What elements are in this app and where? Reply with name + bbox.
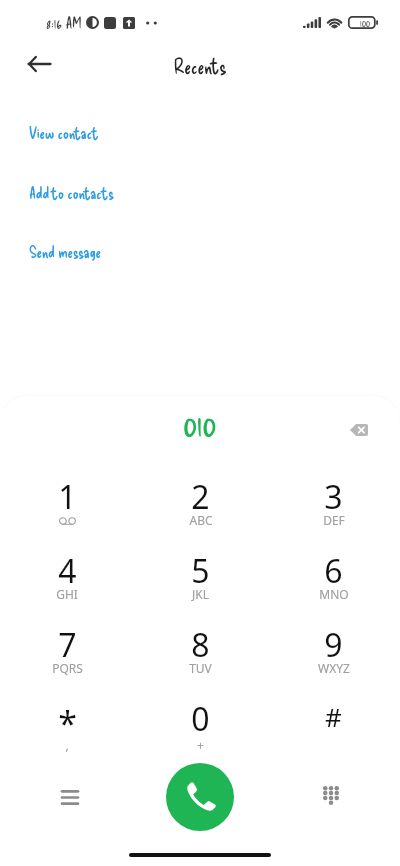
button[interactable]: * (0, 682, 134, 756)
staticText: ABC (189, 512, 213, 528)
staticText: 100 (360, 16, 371, 29)
staticText: 4 (58, 549, 77, 593)
staticText: 8:16 AM (46, 13, 82, 32)
button[interactable]: Send message (0, 230, 400, 272)
button[interactable]: Back (17, 42, 61, 86)
staticText: GHI (56, 586, 78, 602)
button[interactable]: Call (166, 763, 234, 831)
staticText: 9 (324, 623, 343, 667)
button[interactable]: 3 (267, 460, 400, 534)
button[interactable]: 7 (0, 608, 134, 682)
staticText: + (197, 737, 204, 753)
staticText: Add to contacts (29, 183, 115, 202)
button[interactable]: 6 (267, 534, 400, 608)
button[interactable]: Add to contacts (0, 171, 400, 213)
staticText: 7 (58, 623, 77, 667)
staticText: 3 (324, 475, 343, 519)
button[interactable]: Call log menu (48, 775, 92, 819)
button[interactable]: 2 (134, 460, 267, 534)
staticText: , (65, 737, 69, 753)
staticText: # (325, 699, 342, 734)
button[interactable]: 9 (267, 608, 400, 682)
staticText: * (58, 700, 77, 746)
button[interactable]: Backspace (339, 410, 379, 450)
button[interactable]: Dialpad (309, 773, 353, 817)
staticText: 6 (324, 549, 343, 593)
staticText: MNO (319, 586, 349, 602)
button[interactable]: 1 (0, 460, 134, 534)
button[interactable]: View contact (0, 111, 400, 153)
staticText: Send message (29, 242, 102, 261)
button[interactable]: 5 (134, 534, 267, 608)
button[interactable]: 8 (134, 608, 267, 682)
staticText: View contact (29, 123, 99, 142)
staticText: 5 (191, 549, 210, 593)
button[interactable]: 0 (134, 682, 267, 756)
staticText: JKL (192, 586, 209, 602)
staticText: TUV (189, 660, 212, 676)
staticText: DEF (323, 512, 345, 528)
staticText: 1 (58, 475, 77, 519)
staticText: 010 (183, 402, 217, 444)
staticText: 8 (191, 623, 210, 667)
staticText: PQRS (52, 660, 83, 676)
button[interactable]: # (267, 682, 400, 756)
staticText: 0 (191, 697, 210, 741)
staticText: 2 (191, 475, 210, 519)
staticText: WXYZ (318, 660, 350, 676)
button[interactable]: 4 (0, 534, 134, 608)
staticText: Recents (174, 54, 227, 78)
